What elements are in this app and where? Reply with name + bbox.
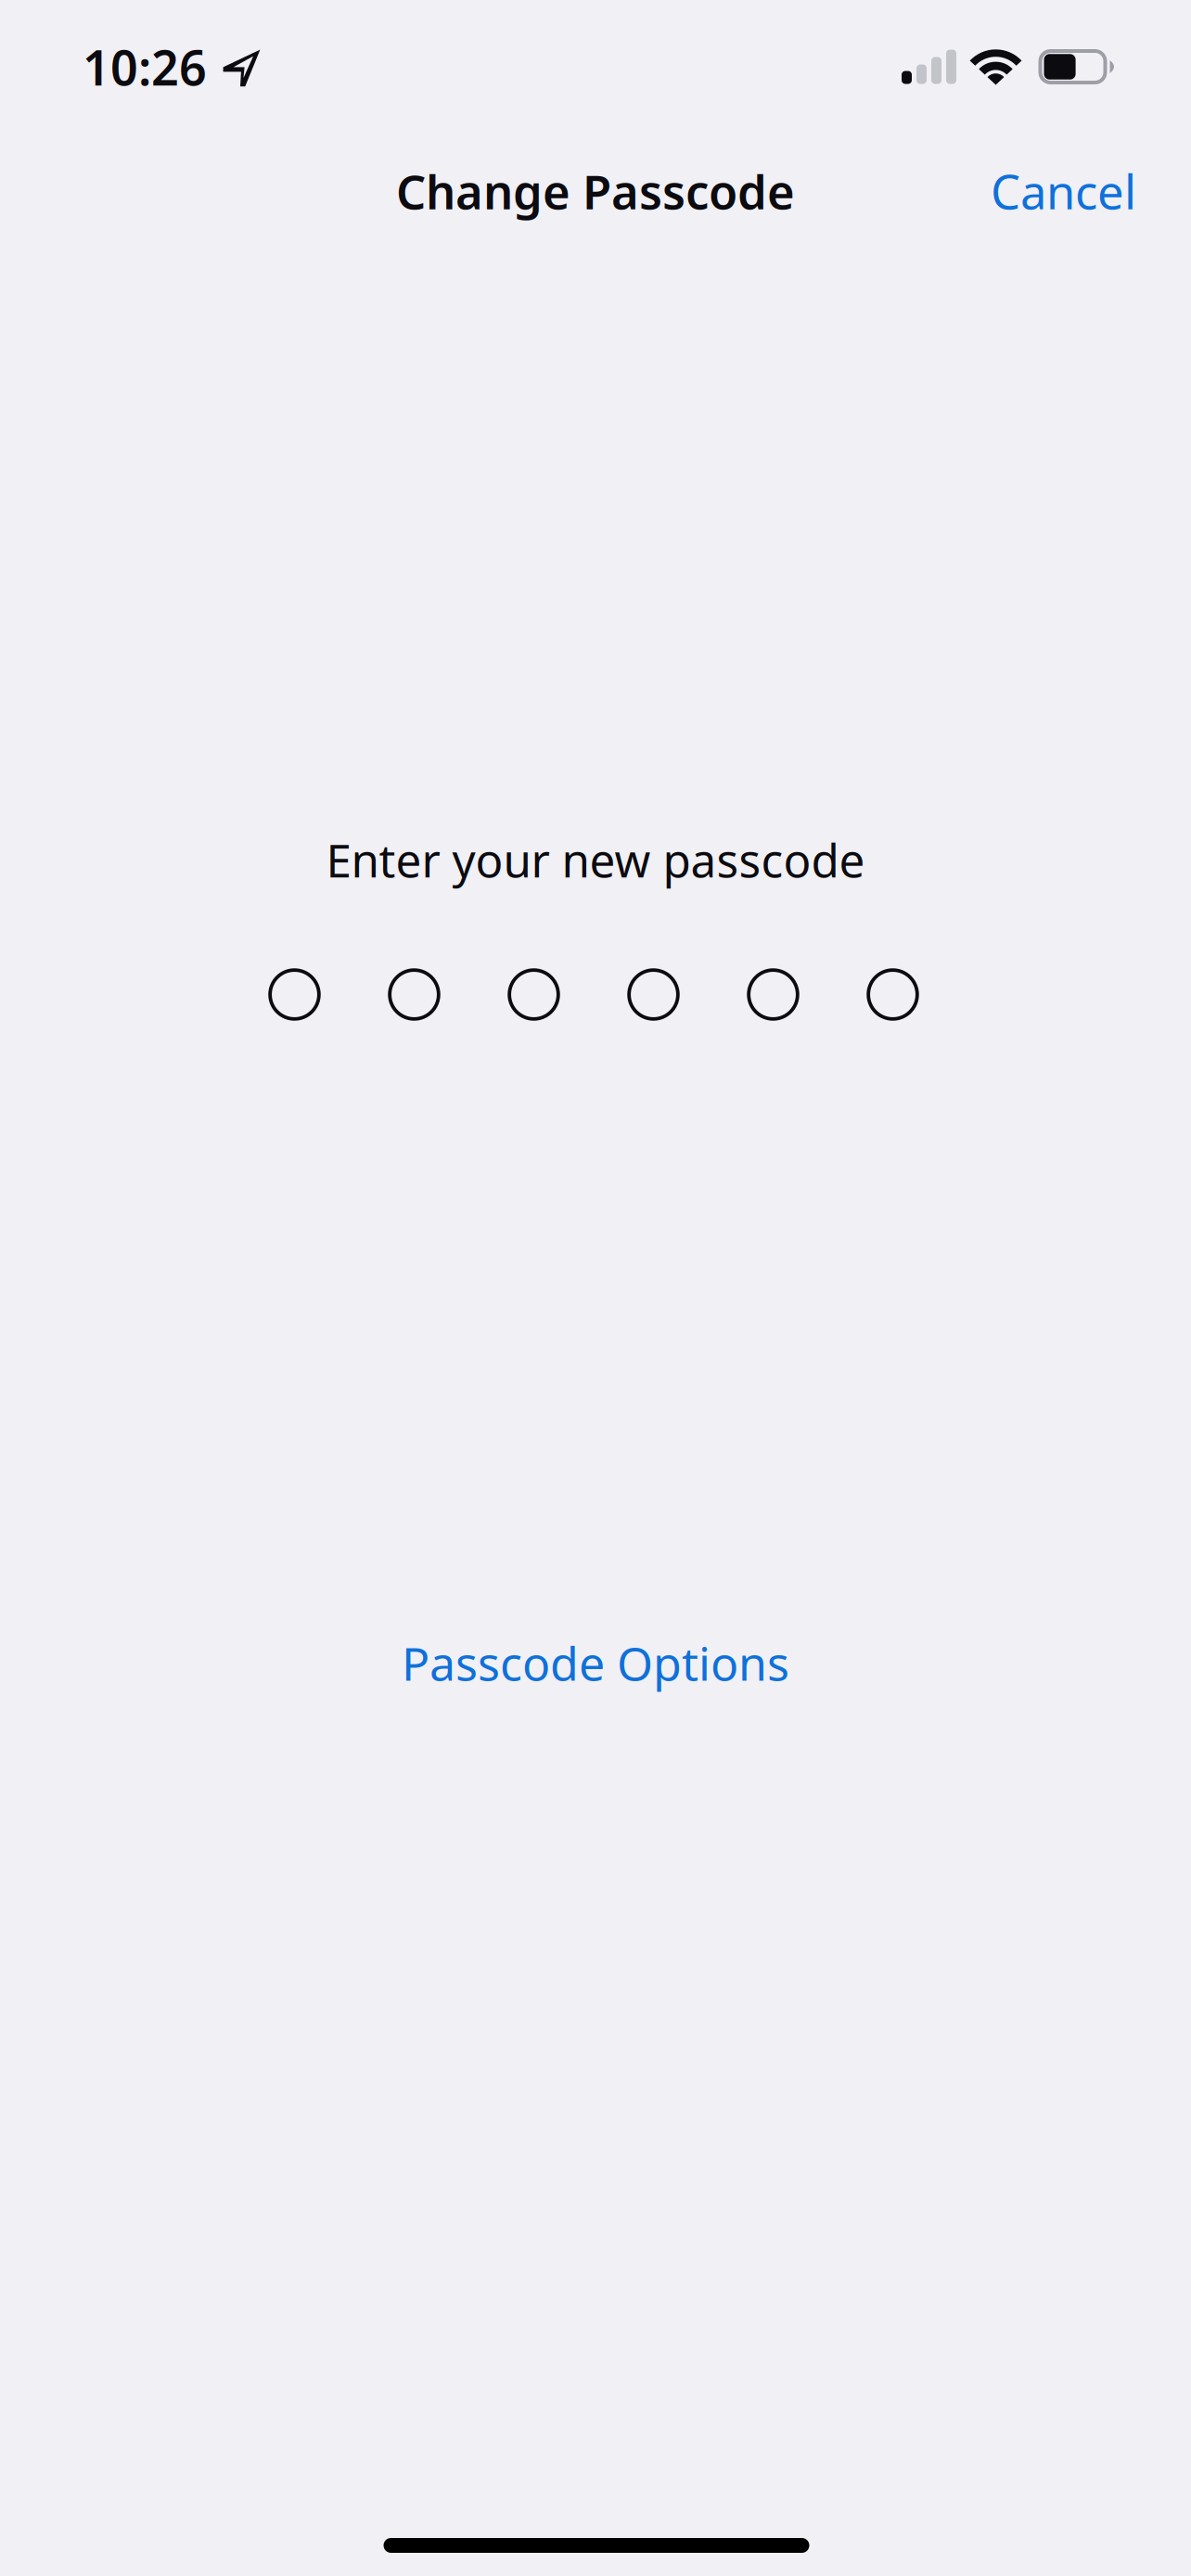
button[interactable]: Passcode Options [346,1613,845,1712]
staticText: 10:26 [83,34,207,100]
staticText: Enter your new passcode [326,828,865,891]
staticText: Passcode Options [402,1631,789,1694]
button[interactable]: Cancel [968,131,1159,251]
staticText: Cancel [991,159,1136,223]
staticText: Change Passcode [396,159,795,223]
